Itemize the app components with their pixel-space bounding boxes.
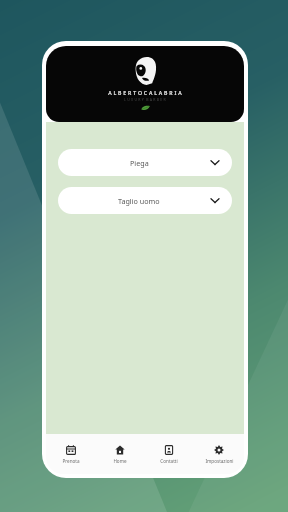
- staticText: L U X U R Y B A R B E R: [124, 97, 166, 102]
- staticText: Home: [113, 458, 127, 464]
- button[interactable]: Prenota: [46, 434, 95, 474]
- staticText: Prenota: [62, 458, 80, 464]
- button[interactable]: Contatti: [144, 434, 194, 474]
- staticText: Impostazioni: [205, 458, 234, 464]
- staticText: Piega: [130, 158, 149, 168]
- staticText: Contatti: [160, 458, 178, 464]
- staticText: A L B E R T O C A L A B R I A: [108, 89, 182, 96]
- button[interactable]: Home: [95, 434, 144, 474]
- button[interactable]: Impostazioni: [194, 434, 244, 474]
- staticText: Taglio uomo: [118, 196, 160, 206]
- button[interactable]: Taglio uomo: [58, 187, 232, 214]
- button[interactable]: Piega: [58, 149, 232, 176]
